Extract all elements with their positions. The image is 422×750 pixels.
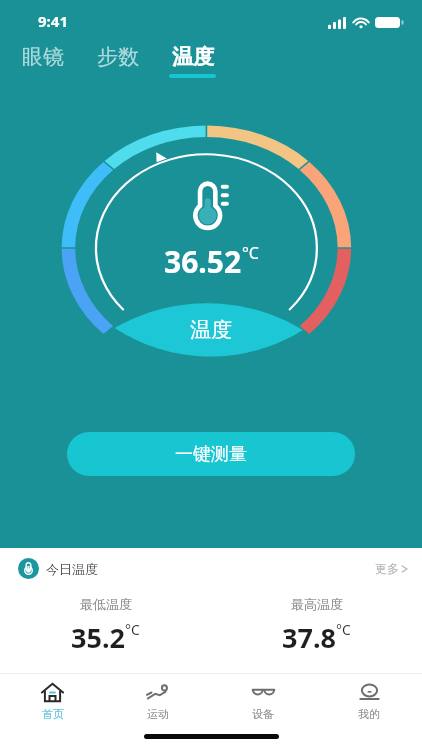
staticText: 9:41 (38, 11, 68, 31)
staticText: 首页 (42, 707, 64, 721)
staticText: °C (125, 620, 140, 639)
button[interactable]: 一键测量 (67, 432, 355, 476)
staticText: °C (336, 620, 351, 639)
button[interactable]: 设备 (210, 676, 316, 726)
staticText: 眼镜 (22, 44, 64, 70)
staticText: °C (242, 242, 259, 264)
button[interactable]: 眼镜 (5, 44, 80, 78)
button[interactable]: 最高温度 (211, 596, 422, 656)
staticText: 36.52 (164, 241, 242, 282)
button[interactable]: 更多 (375, 561, 408, 576)
staticText: 35.2 (71, 619, 125, 656)
button[interactable]: 今日温度 (18, 558, 98, 579)
staticText: 最低温度 (80, 596, 132, 612)
button[interactable]: 运动 (105, 676, 210, 726)
staticText: 温度 (190, 317, 232, 343)
button[interactable]: 首页 (0, 676, 105, 726)
staticText: 更多 (375, 561, 399, 576)
button[interactable]: 我的 (316, 676, 422, 726)
staticText: 我的 (358, 707, 380, 721)
staticText: 设备 (252, 707, 274, 721)
staticText: 37.8 (282, 619, 336, 656)
button[interactable]: 最低温度 (0, 596, 211, 656)
staticText: 今日温度 (46, 561, 98, 577)
staticText: 一键测量 (175, 443, 247, 466)
staticText: 温度 (172, 44, 214, 70)
button[interactable]: 步数 (80, 44, 155, 78)
button[interactable]: 温度 (155, 44, 230, 78)
staticText: 运动 (147, 707, 169, 721)
staticText: 步数 (97, 44, 139, 70)
staticText: 最高温度 (291, 596, 343, 612)
